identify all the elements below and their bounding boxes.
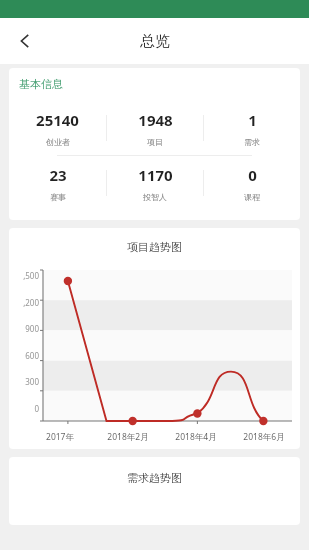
- button[interactable]: 1: [204, 110, 300, 147]
- staticText: 600: [25, 350, 39, 361]
- staticText: 课程: [244, 192, 260, 202]
- staticText: 900: [25, 323, 39, 334]
- staticText: ,500: [23, 270, 39, 281]
- staticText: 23: [49, 165, 67, 185]
- button[interactable]: 25140: [9, 110, 106, 147]
- staticText: 2017年: [46, 431, 74, 443]
- button[interactable]: 1948: [107, 110, 203, 147]
- staticText: 2018年6月: [243, 431, 285, 443]
- staticText: 需求趋势图: [9, 471, 300, 485]
- button[interactable]: 0: [204, 165, 300, 202]
- staticText: 2018年4月: [175, 431, 217, 443]
- staticText: 300: [25, 376, 39, 387]
- staticText: 0: [34, 403, 39, 414]
- staticText: 2018年2月: [107, 431, 149, 443]
- staticText: 25140: [36, 110, 79, 130]
- button[interactable]: 1170: [107, 165, 203, 202]
- staticText: 项目: [147, 137, 163, 147]
- button[interactable]: 23: [9, 165, 106, 202]
- staticText: 1948: [138, 110, 173, 130]
- staticText: 基本信息: [19, 77, 63, 91]
- staticText: 项目趋势图: [9, 240, 300, 254]
- staticText: 总览: [140, 32, 170, 51]
- staticText: 投智人: [143, 192, 167, 202]
- staticText: 1: [248, 110, 257, 130]
- staticText: ,200: [23, 297, 39, 308]
- staticText: 0: [248, 165, 257, 185]
- staticText: 赛事: [50, 192, 66, 202]
- staticText: 需求: [244, 137, 260, 147]
- button[interactable]: Back: [8, 24, 42, 58]
- staticText: 创业者: [46, 137, 70, 147]
- staticText: 1170: [138, 165, 173, 185]
